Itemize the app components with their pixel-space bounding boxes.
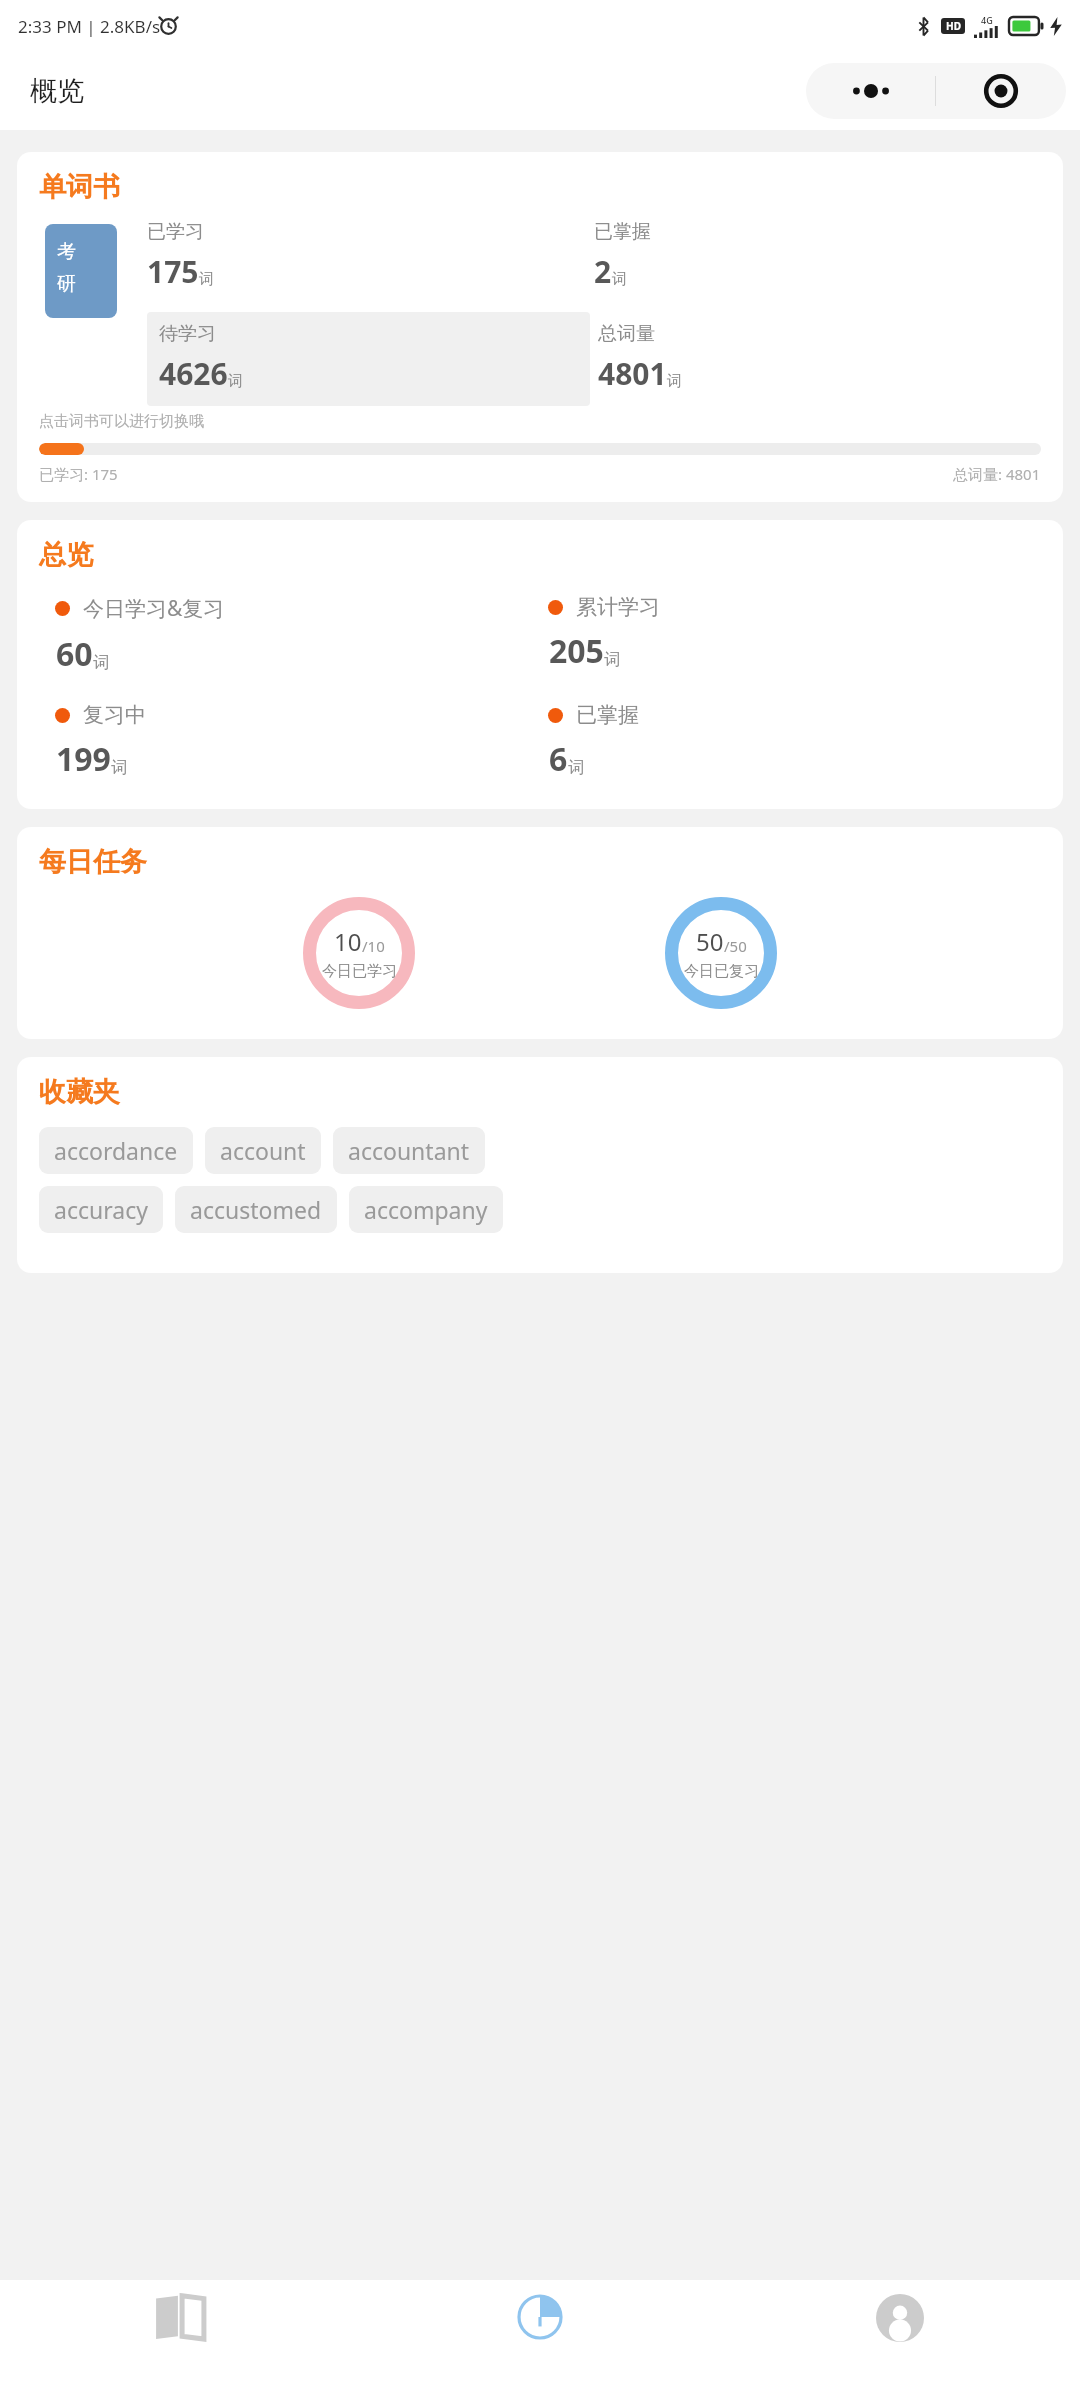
- button[interactable]: 10: [303, 897, 415, 1009]
- staticText: 累计学习: [576, 594, 660, 620]
- staticText: HD: [946, 19, 961, 33]
- staticText: 2: [594, 251, 612, 292]
- staticText: 已掌握: [594, 220, 651, 244]
- staticText: 总词量: 4801: [953, 464, 1041, 484]
- staticText: 总览: [39, 538, 93, 572]
- button[interactable]: 考: [45, 224, 117, 318]
- staticText: accuracy: [54, 1194, 148, 1225]
- staticText: 词: [199, 270, 214, 289]
- staticText: account: [220, 1135, 306, 1166]
- staticText: 60: [56, 632, 93, 676]
- staticText: 已掌握: [576, 702, 639, 728]
- button[interactable]: 收藏夹: [17, 1057, 1063, 1273]
- staticText: 待学习: [159, 322, 216, 346]
- staticText: 4626: [159, 353, 228, 394]
- button[interactable]: account: [205, 1127, 321, 1174]
- staticText: 点击词书可以进行切换哦: [39, 412, 204, 431]
- button[interactable]: accordance: [39, 1127, 193, 1174]
- button[interactable]: accustomed: [175, 1186, 337, 1233]
- staticText: accountant: [348, 1135, 470, 1166]
- staticText: 今日学习&复习: [83, 594, 225, 623]
- staticText: 词: [604, 650, 620, 670]
- staticText: 今日已学习: [322, 962, 397, 981]
- staticText: 考: [57, 240, 76, 264]
- staticText: 199: [56, 737, 111, 781]
- button[interactable]: 每日任务: [17, 827, 1063, 1039]
- button[interactable]: 单词书: [17, 152, 1063, 502]
- staticText: 205: [549, 629, 604, 673]
- button[interactable]: accountant: [333, 1127, 485, 1174]
- staticText: accordance: [54, 1135, 178, 1166]
- staticText: 今日已复习: [684, 962, 759, 981]
- staticText: 4G: [981, 14, 993, 26]
- staticText: 10: [334, 925, 362, 958]
- staticText: /50: [724, 936, 747, 956]
- staticText: 已学习: [147, 220, 204, 244]
- staticText: 概览: [30, 74, 84, 108]
- staticText: 2:33 PM | 2.8KB/s: [18, 15, 161, 38]
- staticText: 50: [696, 925, 724, 958]
- staticText: 总词量: [598, 322, 655, 346]
- staticText: 每日任务: [39, 845, 147, 879]
- staticText: 词: [667, 372, 682, 391]
- staticText: 6: [549, 737, 568, 781]
- button[interactable]: 总览: [17, 520, 1063, 809]
- staticText: 已学习: 175: [39, 464, 118, 484]
- staticText: 词: [228, 372, 243, 391]
- staticText: 词: [568, 758, 584, 778]
- staticText: 词: [612, 270, 627, 289]
- button[interactable]: Statistics: [360, 2280, 720, 2400]
- staticText: accustomed: [190, 1194, 322, 1225]
- staticText: 复习中: [83, 702, 146, 728]
- staticText: 175: [147, 251, 199, 292]
- button[interactable]: Word book: [0, 2280, 360, 2400]
- button[interactable]: More options: [806, 63, 935, 119]
- button[interactable]: accompany: [349, 1186, 503, 1233]
- staticText: accompany: [364, 1194, 488, 1225]
- staticText: 词: [93, 653, 109, 673]
- button[interactable]: 50: [665, 897, 777, 1009]
- staticText: /10: [362, 936, 385, 956]
- staticText: 4801: [598, 353, 667, 394]
- staticText: 词: [111, 758, 127, 778]
- button[interactable]: Profile: [720, 2280, 1080, 2400]
- button[interactable]: Target: [936, 63, 1066, 119]
- staticText: 收藏夹: [39, 1075, 120, 1109]
- staticText: 研: [57, 272, 76, 296]
- staticText: 单词书: [39, 170, 120, 204]
- button[interactable]: accuracy: [39, 1186, 163, 1233]
